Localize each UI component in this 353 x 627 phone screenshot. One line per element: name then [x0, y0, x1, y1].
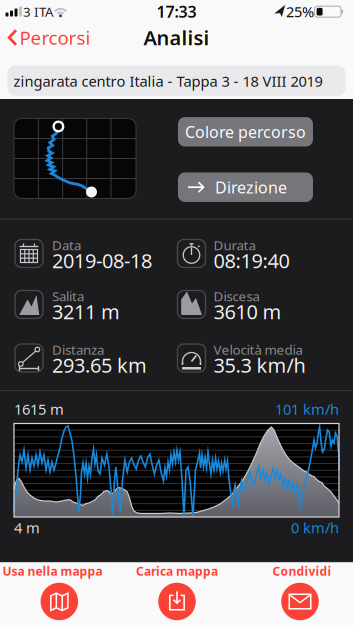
staticText: 2019-08-18: [52, 247, 152, 274]
button[interactable]: Usa nella mappa: [0, 563, 116, 622]
staticText: Usa nella mappa: [2, 563, 102, 579]
staticText: 293.65 km: [52, 352, 147, 378]
staticText: Data: [52, 236, 81, 254]
staticText: 25%: [286, 2, 314, 21]
staticText: Percorsi: [19, 25, 90, 50]
staticText: Colore percorso: [185, 121, 306, 142]
button[interactable]: Direzione: [178, 172, 313, 202]
staticText: 3610 m: [213, 298, 281, 325]
button[interactable]: Carica mappa: [118, 563, 236, 622]
staticText: 3211 m: [52, 298, 120, 325]
staticText: Salita: [52, 287, 84, 305]
staticText: zingarata centro Italia - Tappa 3 - 18 V…: [13, 71, 322, 91]
staticText: Condividi: [272, 563, 331, 579]
button[interactable]: Colore percorso: [178, 117, 313, 147]
staticText: Discesa: [213, 287, 259, 305]
staticText: 3 ITA: [23, 3, 54, 20]
button[interactable]: Percorsi: [3, 27, 99, 48]
staticText: Velocità media: [213, 341, 302, 358]
staticText: 4 m: [14, 518, 40, 537]
staticText: 17:33: [156, 1, 196, 22]
staticText: Carica mappa: [136, 563, 218, 579]
staticText: Distanza: [52, 341, 104, 358]
staticText: Analisi: [143, 24, 209, 51]
staticText: Durata: [213, 236, 255, 254]
button[interactable]: zingarata centro Italia - Tappa 3 - 18 V…: [7, 65, 345, 96]
staticText: 0 km/h: [291, 518, 339, 537]
staticText: 1615 m: [14, 399, 64, 419]
staticText: 101 km/h: [275, 399, 339, 419]
staticText: Direzione: [215, 177, 287, 198]
staticText: 35.3 km/h: [213, 352, 305, 378]
staticText: 08:19:40: [213, 247, 289, 274]
button[interactable]: Condividi: [242, 563, 353, 622]
